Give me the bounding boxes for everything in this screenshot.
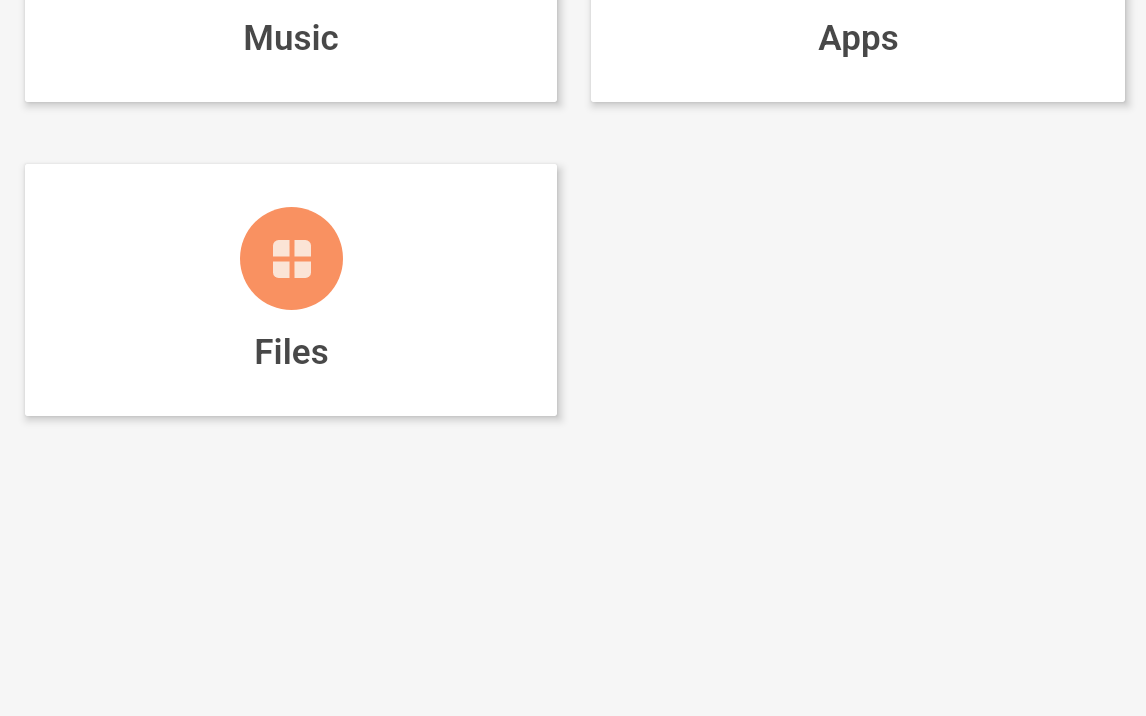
staticText: Music bbox=[243, 18, 339, 59]
staticText: Apps bbox=[818, 18, 899, 59]
button[interactable]: Music bbox=[25, 0, 557, 102]
staticText: Files bbox=[254, 332, 329, 373]
button[interactable]: Files bbox=[25, 164, 557, 416]
button[interactable]: Apps bbox=[591, 0, 1125, 102]
